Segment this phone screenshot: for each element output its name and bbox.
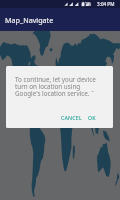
staticText: To continue, let your device turn on loc…	[15, 75, 96, 98]
button[interactable]: To continue, let your device turn on loc…	[6, 66, 113, 128]
staticText: 3:04 PM	[97, 1, 115, 7]
staticText: OK	[88, 114, 96, 121]
staticText: Map_Navigate	[5, 15, 54, 25]
staticText: 41%	[82, 1, 92, 7]
button[interactable]: CANCEL	[58, 111, 85, 124]
staticText: CANCEL	[61, 114, 82, 121]
button[interactable]: OK	[85, 111, 99, 124]
